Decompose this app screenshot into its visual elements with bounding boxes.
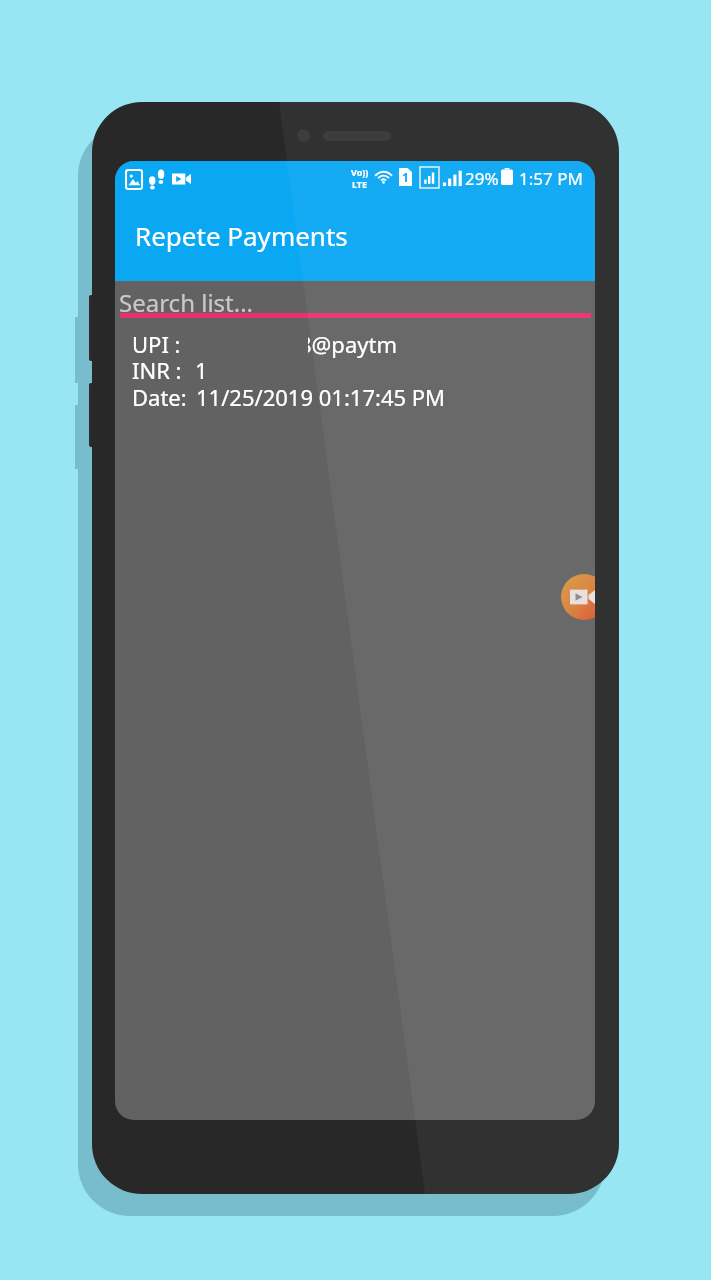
button[interactable]: Search list...	[115, 281, 595, 321]
staticText: Search list...	[119, 286, 254, 319]
staticText: 29%	[465, 167, 499, 190]
button[interactable]: Record a new video payment	[561, 574, 595, 620]
staticText: 8@paytm	[299, 329, 397, 359]
button[interactable]: UPI :	[115, 321, 595, 411]
staticText: LTE	[352, 178, 368, 190]
staticText: 11/25/2019 01:17:45 PM	[196, 382, 446, 412]
staticText: UPI :	[132, 329, 181, 359]
staticText: 1	[195, 355, 208, 385]
staticText: Date:	[132, 382, 187, 412]
staticText: Repete Payments	[135, 218, 348, 253]
staticText: INR :	[132, 355, 182, 385]
staticText: Vo))	[351, 166, 369, 178]
staticText: 1:57 PM	[519, 167, 583, 190]
staticText: 1	[402, 169, 409, 185]
